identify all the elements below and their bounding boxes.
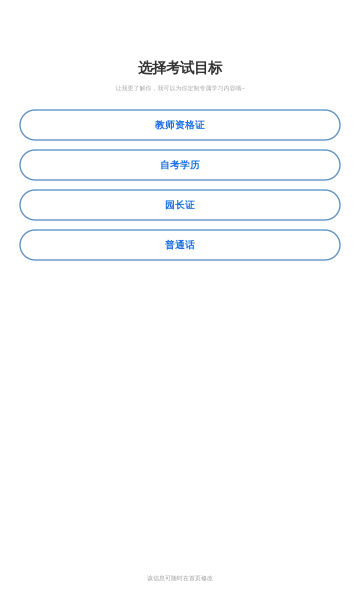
button[interactable]: 教师资格证 [20, 110, 340, 140]
staticText: 该信息可随时在首页修改 [147, 574, 213, 582]
staticText: 选择考试目标 [138, 59, 222, 77]
button[interactable]: 园长证 [20, 190, 340, 220]
staticText: 让我更了解你，我可以为你定制专属学习内容哦~ [115, 84, 244, 92]
staticText: 园长证 [165, 199, 195, 211]
staticText: 普通话 [165, 239, 195, 251]
button[interactable]: 普通话 [20, 230, 340, 260]
staticText: 教师资格证 [155, 119, 205, 131]
button[interactable]: 自考学历 [20, 150, 340, 180]
staticText: 自考学历 [160, 159, 200, 171]
